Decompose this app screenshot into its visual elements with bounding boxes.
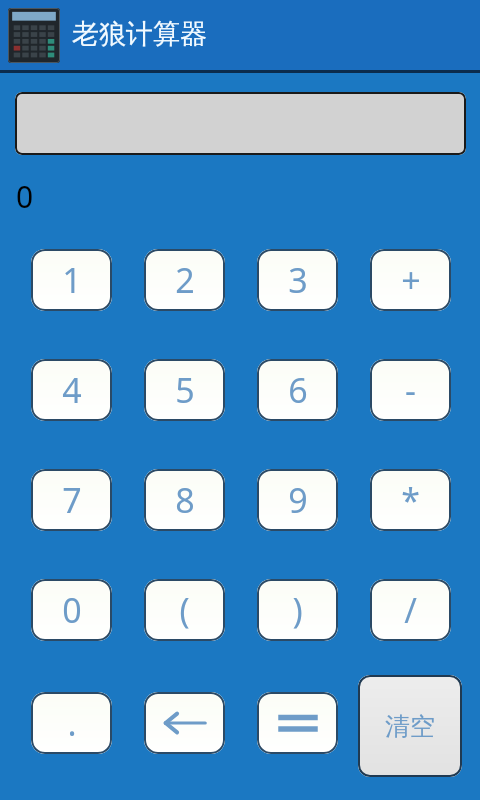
staticText: 0 [16,176,34,217]
button[interactable]: Equals [257,692,338,754]
staticText: 6 [288,367,308,413]
button[interactable]: 2 [144,249,225,311]
button[interactable]: 4 [31,359,112,421]
button[interactable]: 8 [144,469,225,531]
button[interactable]: 清空 [358,675,462,777]
staticText: 1 [62,257,82,303]
button[interactable]: / [370,579,451,641]
button[interactable]: 1 [31,249,112,311]
staticText: 4 [62,367,82,413]
staticText: - [405,367,416,413]
button[interactable]: 3 [257,249,338,311]
button[interactable]: 5 [144,359,225,421]
button[interactable]: + [370,249,451,311]
staticText: 8 [175,477,195,523]
button[interactable] [15,92,466,155]
staticText: / [404,587,417,633]
staticText: 2 [175,257,195,303]
staticText: 9 [288,477,308,523]
button[interactable]: 0 [31,579,112,641]
button[interactable]: . [31,692,112,754]
button[interactable]: 7 [31,469,112,531]
staticText: 老狼计算器 [72,17,207,51]
staticText: ) [292,587,303,633]
staticText: * [401,477,420,523]
staticText: 清空 [385,711,435,742]
staticText: . [67,700,77,746]
button[interactable]: 6 [257,359,338,421]
button[interactable]: 9 [257,469,338,531]
button[interactable]: ( [144,579,225,641]
button[interactable]: * [370,469,451,531]
staticText: ( [179,587,190,633]
button[interactable]: - [370,359,451,421]
staticText: + [401,257,421,303]
staticText: 0 [62,587,82,633]
staticText: 7 [62,477,82,523]
staticText: 3 [288,257,308,303]
button[interactable]: ) [257,579,338,641]
staticText: 5 [175,367,195,413]
button[interactable]: Backspace [144,692,225,754]
